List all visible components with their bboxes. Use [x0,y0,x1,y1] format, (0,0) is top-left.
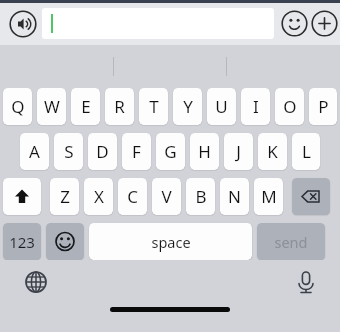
staticText: J [236,140,241,163]
staticText: P [318,95,329,118]
button[interactable]: W [37,88,66,125]
staticText: G [164,140,177,163]
staticText: Y [183,95,193,118]
staticText: V [161,185,172,208]
button[interactable]: 123 [3,223,41,260]
button[interactable]: Voice message [9,10,37,38]
staticText: D [96,140,109,163]
button[interactable]: J [224,133,253,170]
button[interactable]: M [254,178,283,215]
staticText: X [94,185,104,208]
staticText: space [151,232,191,252]
button[interactable]: B [186,178,215,215]
button[interactable]: Add attachment [311,10,338,37]
staticText: O [283,95,297,118]
staticText: E [81,95,91,118]
button[interactable]: X [84,178,113,215]
staticText: Z [60,185,70,208]
button[interactable]: A [20,133,49,170]
button[interactable]: C [118,178,147,215]
button[interactable] [42,8,274,39]
button[interactable]: T [139,88,168,125]
staticText: S [64,140,74,163]
button[interactable]: O [275,88,304,125]
button[interactable]: Dictate [292,268,320,296]
staticText: Q [11,95,25,118]
button[interactable]: Z [50,178,79,215]
button[interactable]: Shift [3,178,41,215]
button[interactable]: H [190,133,219,170]
button[interactable]: V [152,178,181,215]
staticText: B [195,185,207,208]
button[interactable]: K [258,133,287,170]
button[interactable]: space [89,223,252,260]
staticText: K [267,140,278,163]
staticText: N [228,185,241,208]
button[interactable]: L [292,133,320,170]
staticText: R [114,95,125,118]
button[interactable]: D [88,133,117,170]
button[interactable]: N [220,178,249,215]
staticText: C [127,185,138,208]
staticText: F [132,140,141,163]
button[interactable]: E [71,88,100,125]
staticText: T [149,95,159,118]
button[interactable]: U [207,88,236,125]
button[interactable]: send [257,223,325,260]
button[interactable]: P [309,88,337,125]
staticText: 123 [9,232,35,252]
staticText: send [274,232,308,252]
button[interactable]: Backspace [292,178,330,215]
button[interactable]: I [241,88,270,125]
button[interactable]: Emoji keyboard [46,223,84,260]
staticText: W [44,95,60,118]
button[interactable]: S [54,133,83,170]
staticText: L [302,140,311,163]
button[interactable]: Emoji [281,10,308,37]
button[interactable]: Q [3,88,32,125]
button[interactable]: G [156,133,185,170]
staticText: H [198,140,211,163]
button[interactable]: R [105,88,134,125]
staticText: A [29,140,40,163]
staticText: U [215,95,228,118]
staticText: I [253,95,259,118]
staticText: M [261,185,277,208]
button[interactable]: F [122,133,151,170]
button[interactable]: Switch keyboard language [22,268,50,296]
button[interactable]: Y [173,88,202,125]
